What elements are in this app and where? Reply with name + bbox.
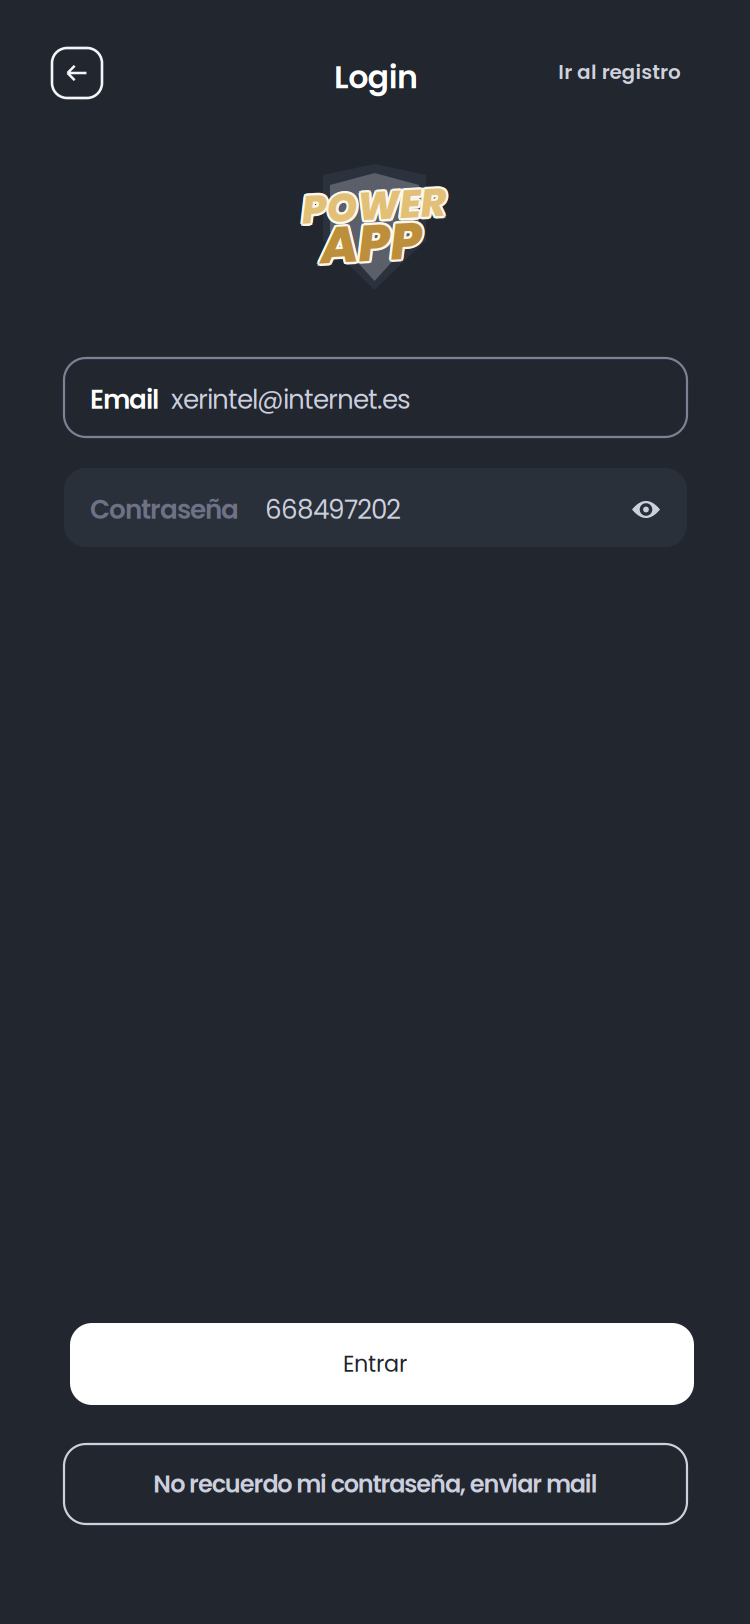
staticText: APP: [318, 206, 420, 277]
staticText: APP: [320, 207, 422, 278]
staticText: No recuerdo mi contraseña, enviar mail: [153, 1467, 598, 1501]
staticText: APP: [318, 209, 420, 280]
staticText: APP: [320, 205, 422, 276]
button[interactable]: Entrar: [70, 1323, 694, 1405]
staticText: Contraseña: [90, 491, 239, 528]
staticText: POWER: [300, 180, 445, 235]
staticText: Ir al registro: [558, 58, 681, 86]
staticText: POWER: [301, 179, 446, 233]
button[interactable]: No recuerdo mi contraseña, enviar mail: [64, 1444, 687, 1524]
staticText: APP: [322, 206, 424, 277]
staticText: POWER: [304, 179, 449, 233]
staticText: Email: [90, 381, 159, 418]
staticText: APP: [322, 209, 424, 280]
staticText: POWER: [301, 176, 446, 231]
staticText: Login: [334, 55, 418, 99]
staticText: POWER: [303, 180, 448, 235]
staticText: 668497202: [265, 491, 401, 528]
staticText: POWER: [299, 179, 444, 233]
staticText: xerintel@internet.es: [171, 381, 411, 418]
button[interactable]: Ir al registro: [521, 52, 681, 92]
staticText: POWER: [300, 177, 445, 232]
staticText: POWER: [303, 177, 448, 232]
staticText: APP: [320, 210, 422, 281]
staticText: POWER: [301, 181, 446, 236]
staticText: Entrar: [343, 1348, 407, 1380]
staticText: APP: [318, 207, 420, 278]
staticText: APP: [322, 207, 424, 278]
button[interactable]: Back: [52, 48, 102, 98]
button[interactable]: Show password: [631, 499, 661, 519]
